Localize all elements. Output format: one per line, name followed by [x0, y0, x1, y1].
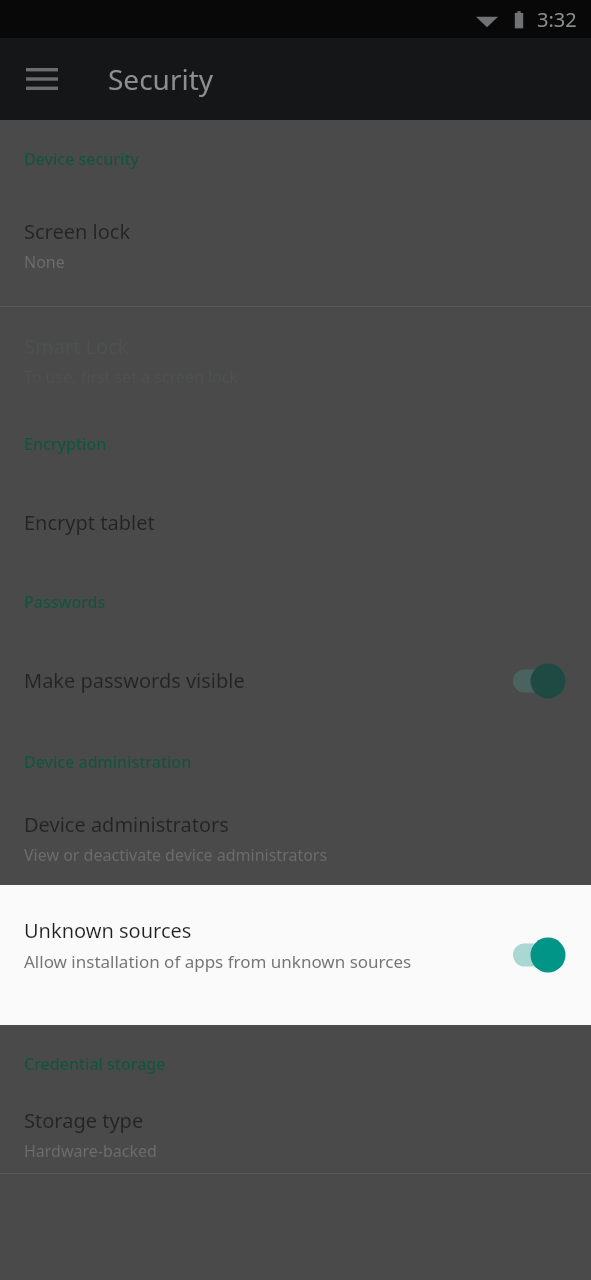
staticText: Passwords	[24, 591, 106, 613]
staticText: Encryption	[24, 433, 107, 455]
button[interactable]: Encrypt tablet	[0, 491, 591, 579]
button[interactable]: Open navigation drawer	[14, 51, 70, 107]
button[interactable]: Make passwords visible	[0, 651, 591, 739]
staticText: None	[24, 251, 65, 273]
staticText: Screen lock	[24, 218, 131, 245]
staticText: View or deactivate device administrators	[24, 844, 328, 866]
button[interactable]: Screen lock	[0, 208, 591, 306]
staticText: 3:32	[537, 6, 577, 33]
button[interactable]: Unknown sources	[0, 885, 591, 1025]
staticText: Encrypt tablet	[24, 509, 155, 536]
button[interactable]: Storage type	[0, 1097, 591, 1173]
staticText: Make passwords visible	[24, 667, 245, 694]
staticText: Unknown sources	[24, 917, 192, 944]
staticText: Storage type	[24, 1107, 144, 1134]
staticText: Security	[108, 60, 214, 98]
staticText: Credential storage	[24, 1053, 166, 1075]
staticText: Hardware-backed	[24, 1140, 157, 1162]
staticText: Allow installation of apps from unknown …	[24, 950, 412, 973]
button[interactable]: Device administrators	[0, 807, 591, 885]
staticText: Device administrators	[24, 811, 229, 838]
staticText: Device administration	[24, 751, 192, 773]
staticText: Device security	[24, 148, 140, 170]
